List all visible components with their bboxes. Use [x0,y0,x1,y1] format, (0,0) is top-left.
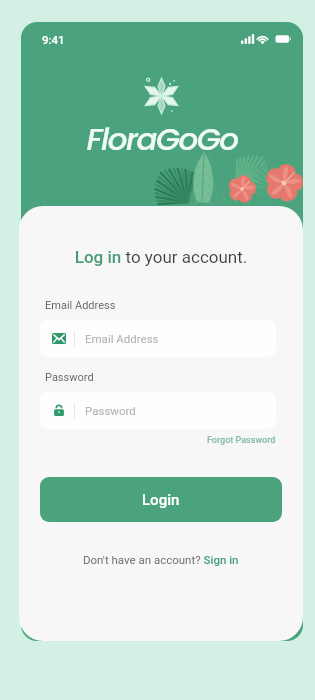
button[interactable]: Password [40,392,276,429]
staticText: Password [85,404,136,417]
staticText: 9:41 [42,33,65,46]
button[interactable]: Forgot Password [195,432,276,448]
staticText: Log in to your account. [19,247,303,267]
staticText: Email Address [85,332,159,345]
button[interactable]: Login [40,477,282,522]
staticText: FloraGoGo [21,117,303,160]
staticText: Login [142,491,180,509]
staticText: Don't have an account? Sign in [83,553,239,566]
other: Signal, Wi-Fi and battery status [241,34,290,44]
button[interactable]: Email Address [40,320,276,357]
button[interactable]: Don't have an account? Sign in [19,549,303,569]
staticText: Password [45,371,94,384]
staticText: Email Address [45,299,116,312]
staticText: Forgot Password [207,435,276,446]
